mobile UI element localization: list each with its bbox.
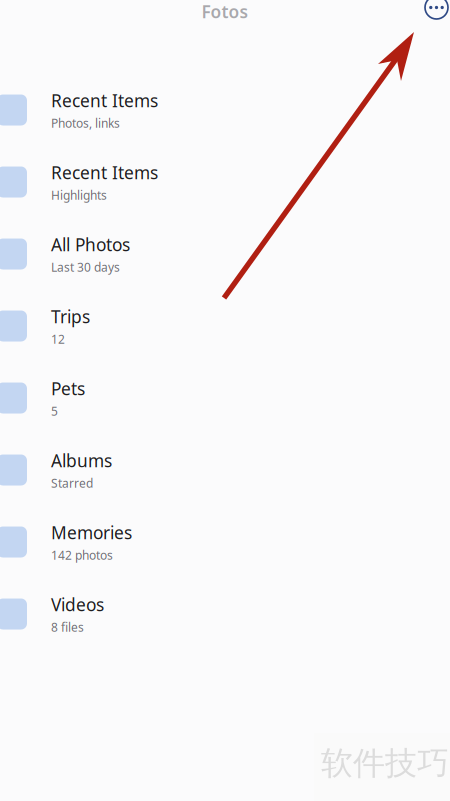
staticText: Recent Items: [51, 161, 158, 184]
button[interactable]: Trips: [0, 290, 450, 362]
staticText: All Photos: [51, 233, 130, 256]
button[interactable]: More options: [425, 0, 448, 19]
staticText: Starred: [51, 475, 93, 491]
button[interactable]: Recent Items: [0, 74, 450, 146]
staticText: 软件技巧: [321, 744, 449, 783]
button[interactable]: Recent Items: [0, 146, 450, 218]
staticText: 8 files: [51, 619, 84, 635]
staticText: Fotos: [201, 0, 248, 23]
staticText: 5: [51, 403, 58, 419]
staticText: Highlights: [51, 187, 107, 203]
button[interactable]: Albums: [0, 434, 450, 506]
staticText: Pets: [51, 377, 85, 400]
button[interactable]: All Photos: [0, 218, 450, 290]
button[interactable]: Pets: [0, 362, 450, 434]
staticText: Albums: [51, 449, 112, 472]
staticText: 12: [51, 331, 65, 347]
button[interactable]: Videos: [0, 578, 450, 650]
button[interactable]: Memories: [0, 506, 450, 578]
staticText: Recent Items: [51, 89, 158, 112]
staticText: Last 30 days: [51, 259, 120, 275]
staticText: 142 photos: [51, 547, 113, 563]
staticText: Videos: [51, 593, 104, 616]
staticText: Photos, links: [51, 115, 120, 131]
staticText: Trips: [51, 305, 90, 328]
staticText: Memories: [51, 521, 132, 544]
